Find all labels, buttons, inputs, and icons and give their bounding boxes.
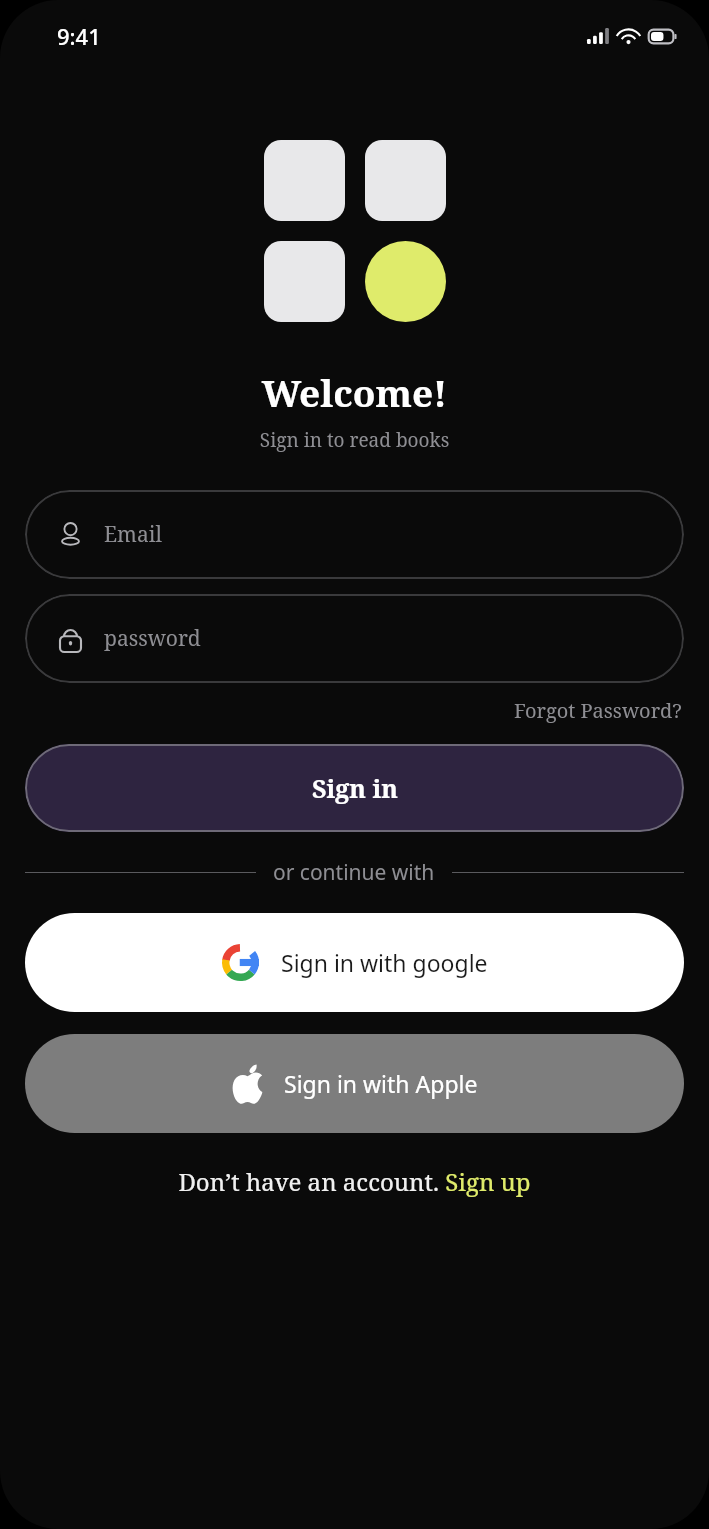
staticText: 9:41 <box>57 21 101 51</box>
button[interactable]: password <box>25 594 684 683</box>
staticText: Sign in <box>312 771 398 805</box>
button[interactable]: Sign in with google <box>25 913 684 1012</box>
staticText: Sign in with Apple <box>284 1068 478 1099</box>
button[interactable]: Sign in <box>25 744 684 832</box>
staticText: Email <box>104 520 162 549</box>
staticText: Sign in to read books <box>0 427 709 453</box>
button[interactable]: Forgot Password? <box>512 695 684 726</box>
staticText: or continue with <box>273 858 435 887</box>
button[interactable]: Don’t have an account. Sign up <box>172 1161 537 1202</box>
staticText: Sign in with google <box>281 947 488 978</box>
button[interactable]: Sign in with Apple <box>25 1034 684 1133</box>
button[interactable]: Email <box>25 490 684 579</box>
staticText: password <box>104 624 201 653</box>
staticText: Forgot Password? <box>514 697 682 724</box>
staticText: Don’t have an account. Sign up <box>178 1165 531 1198</box>
staticText: Welcome! <box>0 367 709 417</box>
